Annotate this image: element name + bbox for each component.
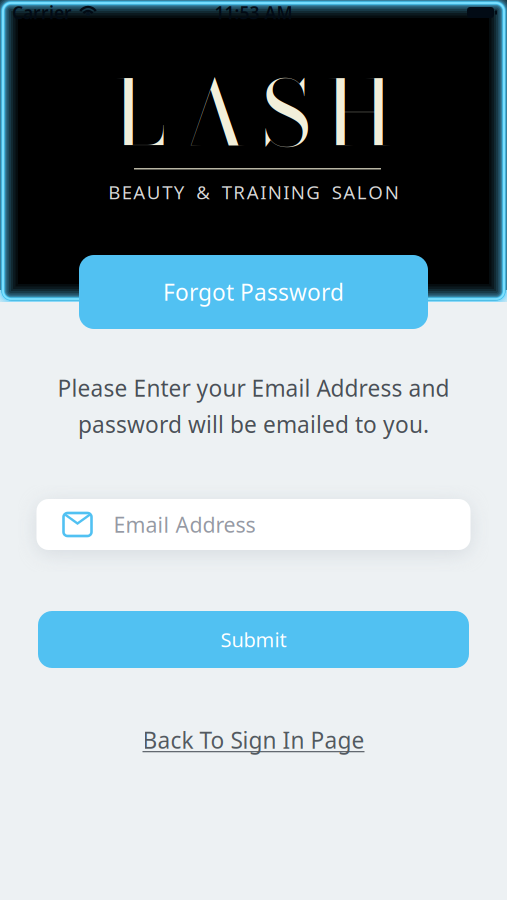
staticText: S [332,179,342,204]
staticText: O [368,179,383,204]
staticText: & [196,179,210,204]
staticText: Forgot Password [163,277,344,307]
staticText: Carrier [12,1,72,24]
staticText: Y [174,179,185,204]
staticText: N [291,179,305,204]
staticText: G [306,179,320,204]
staticText: N [385,179,399,204]
button[interactable]: Forgot Password [79,255,428,329]
staticText: S [261,45,311,181]
button[interactable]: Back To Sign In Page [142,725,364,755]
staticText: A [133,179,145,204]
staticText: B [108,179,120,204]
staticText: Submit [220,626,286,653]
staticText: 11:53 AM [214,1,292,24]
staticText: Email Address [113,510,255,539]
staticText: Back To Sign In Page [142,725,364,755]
staticText: A [247,179,259,204]
staticText: L [114,45,165,181]
staticText: A [180,45,246,181]
staticText: I [260,179,266,204]
staticText: H [326,45,392,181]
button[interactable]: Submit [38,611,469,668]
staticText: T [222,179,232,204]
staticText: U [147,179,161,204]
staticText: R [233,179,245,204]
staticText: I [283,179,289,204]
staticText: Please Enter your Email Address and [57,373,449,403]
button[interactable]: Email Address [36,499,470,550]
staticText: password will be emailed to you. [78,409,429,439]
staticText: L [357,179,367,204]
staticText: A [343,179,355,204]
staticText: T [162,179,172,204]
staticText: E [122,179,132,204]
staticText: N [268,179,282,204]
